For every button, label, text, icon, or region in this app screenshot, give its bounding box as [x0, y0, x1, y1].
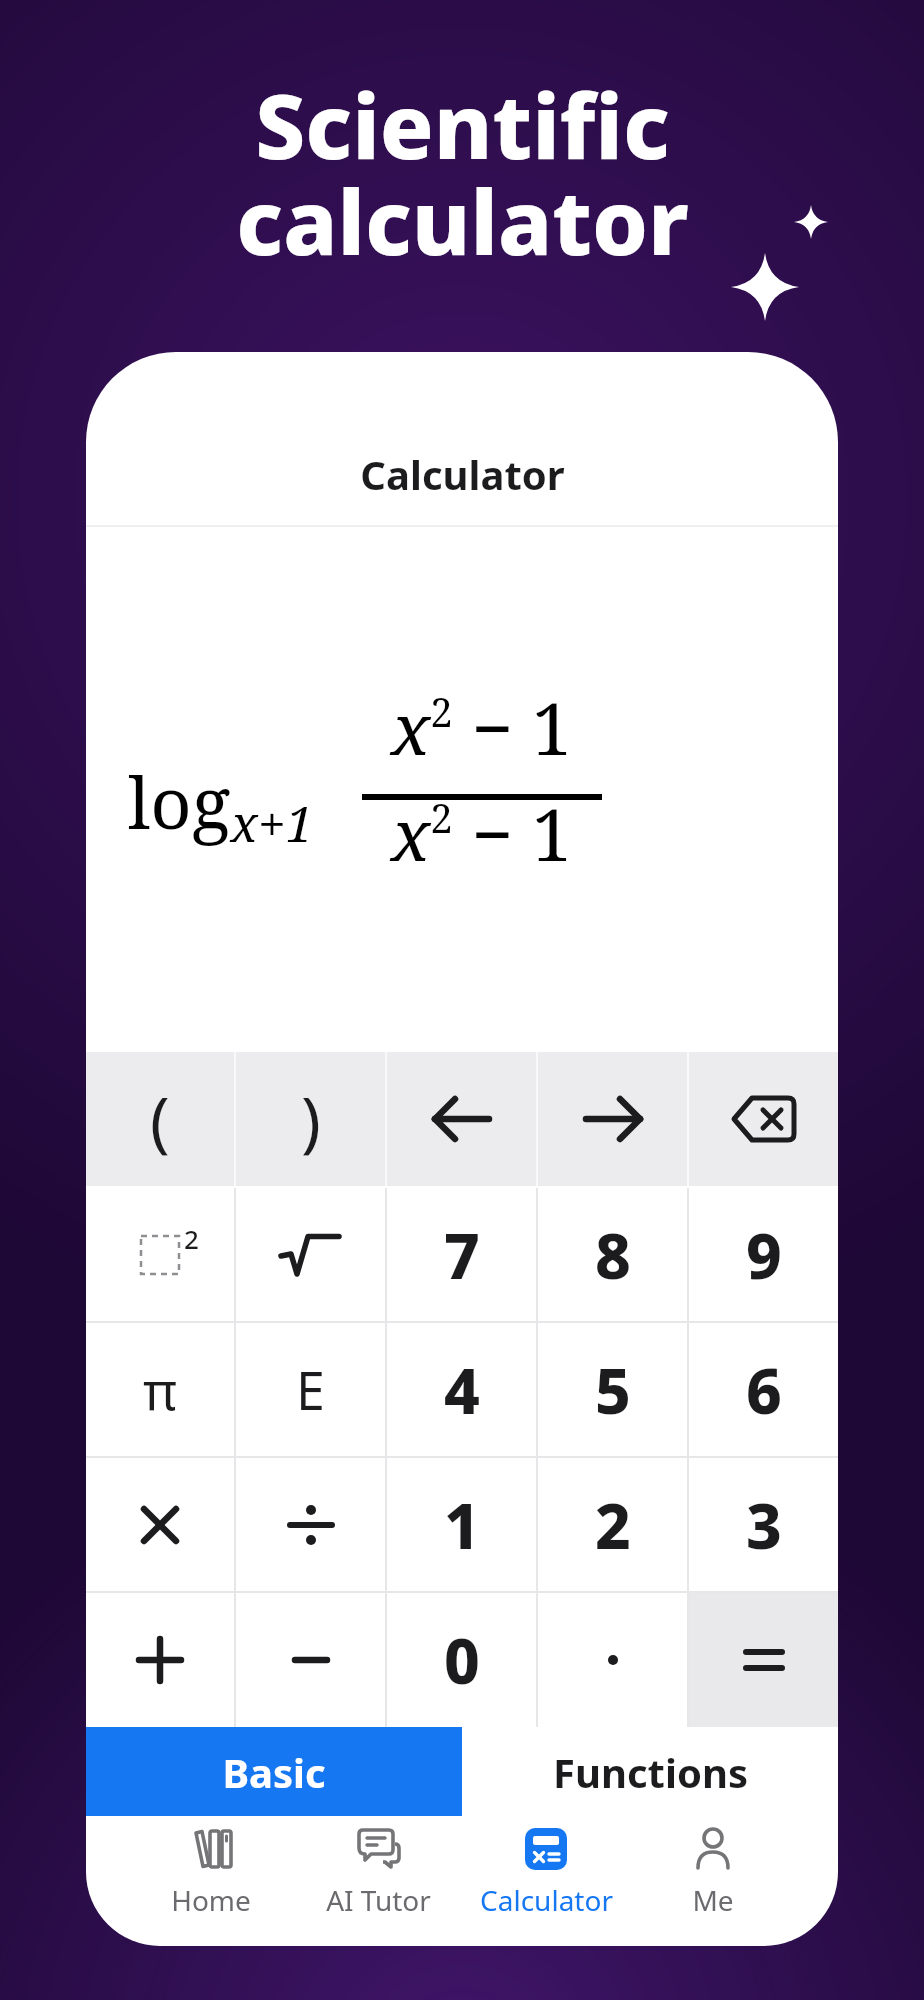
button[interactable]: 6: [689, 1323, 838, 1456]
button[interactable]: [538, 1052, 687, 1186]
button[interactable]: [236, 1188, 385, 1321]
staticText: E: [296, 1354, 325, 1425]
button[interactable]: 7: [387, 1188, 536, 1321]
staticText: 1: [444, 1483, 480, 1567]
button[interactable]: 5: [538, 1323, 687, 1456]
button[interactable]: π: [86, 1323, 234, 1456]
staticText: (: [150, 1074, 170, 1164]
button[interactable]: Functions: [462, 1727, 838, 1816]
button[interactable]: 2: [538, 1458, 687, 1591]
staticText: Functions: [553, 1745, 748, 1799]
button[interactable]: AI Tutor: [298, 1826, 458, 1919]
button[interactable]: 4: [387, 1323, 536, 1456]
button[interactable]: Home: [131, 1826, 291, 1919]
button[interactable]: E: [236, 1323, 385, 1456]
staticText: 9: [746, 1213, 782, 1297]
staticText: π: [143, 1354, 177, 1425]
button[interactable]: (: [86, 1052, 234, 1186]
staticText: 2: [184, 1221, 199, 1256]
button[interactable]: [387, 1052, 536, 1186]
button[interactable]: [538, 1593, 687, 1727]
staticText: x2 − 1: [391, 784, 573, 882]
staticText: Me: [692, 1881, 734, 1919]
button[interactable]: [689, 1052, 838, 1186]
button[interactable]: [86, 1458, 234, 1591]
button[interactable]: Calculator: [466, 1826, 626, 1919]
staticText: 7: [444, 1213, 480, 1297]
button[interactable]: 1: [387, 1458, 536, 1591]
staticText: AI Tutor: [326, 1881, 431, 1919]
staticText: 4: [444, 1348, 480, 1432]
staticText: 5: [595, 1348, 631, 1432]
staticText: Calculator: [480, 1881, 613, 1919]
staticText: ): [301, 1074, 321, 1164]
button[interactable]: [86, 1593, 234, 1727]
button[interactable]: [236, 1593, 385, 1727]
button[interactable]: Basic: [86, 1727, 462, 1816]
button[interactable]: 3: [689, 1458, 838, 1591]
button[interactable]: 9: [689, 1188, 838, 1321]
staticText: Calculator: [360, 447, 565, 501]
button[interactable]: 2: [86, 1188, 234, 1321]
staticText: 3: [746, 1483, 782, 1567]
staticText: Scientific calculator: [236, 64, 689, 281]
staticText: logx+1: [128, 752, 314, 857]
button[interactable]: Me: [633, 1826, 793, 1919]
staticText: Home: [171, 1881, 251, 1919]
button[interactable]: ): [236, 1052, 385, 1186]
staticText: Basic: [222, 1745, 326, 1799]
staticText: 6: [746, 1348, 782, 1432]
button[interactable]: 8: [538, 1188, 687, 1321]
staticText: 2: [595, 1483, 631, 1567]
button[interactable]: [236, 1458, 385, 1591]
staticText: 0: [444, 1618, 480, 1702]
staticText: x2 − 1: [391, 678, 573, 776]
button[interactable]: 0: [387, 1593, 536, 1727]
button[interactable]: [689, 1593, 838, 1727]
staticText: 8: [595, 1213, 631, 1297]
